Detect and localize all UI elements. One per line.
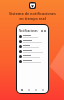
button[interactable]: [17, 49, 48, 54]
staticText: en tiempo real: [19, 16, 46, 21]
button[interactable]: [17, 34, 48, 39]
button[interactable]: Tab 0: [20, 88, 24, 92]
button[interactable]: Tab 2: [34, 88, 38, 92]
button[interactable]: [17, 54, 48, 59]
button[interactable]: Tab 1: [27, 88, 31, 92]
staticText: Sistema de notificaciones: [9, 11, 56, 16]
button[interactable]: [17, 44, 48, 49]
button[interactable]: [17, 59, 48, 64]
button[interactable]: More: [44, 30, 46, 32]
staticText: Notificaciones: [19, 29, 38, 33]
button[interactable]: Search: [41, 30, 43, 32]
button[interactable]: Tab 3: [41, 88, 45, 92]
button[interactable]: [17, 39, 48, 44]
button[interactable]: App logo: [29, 2, 36, 9]
